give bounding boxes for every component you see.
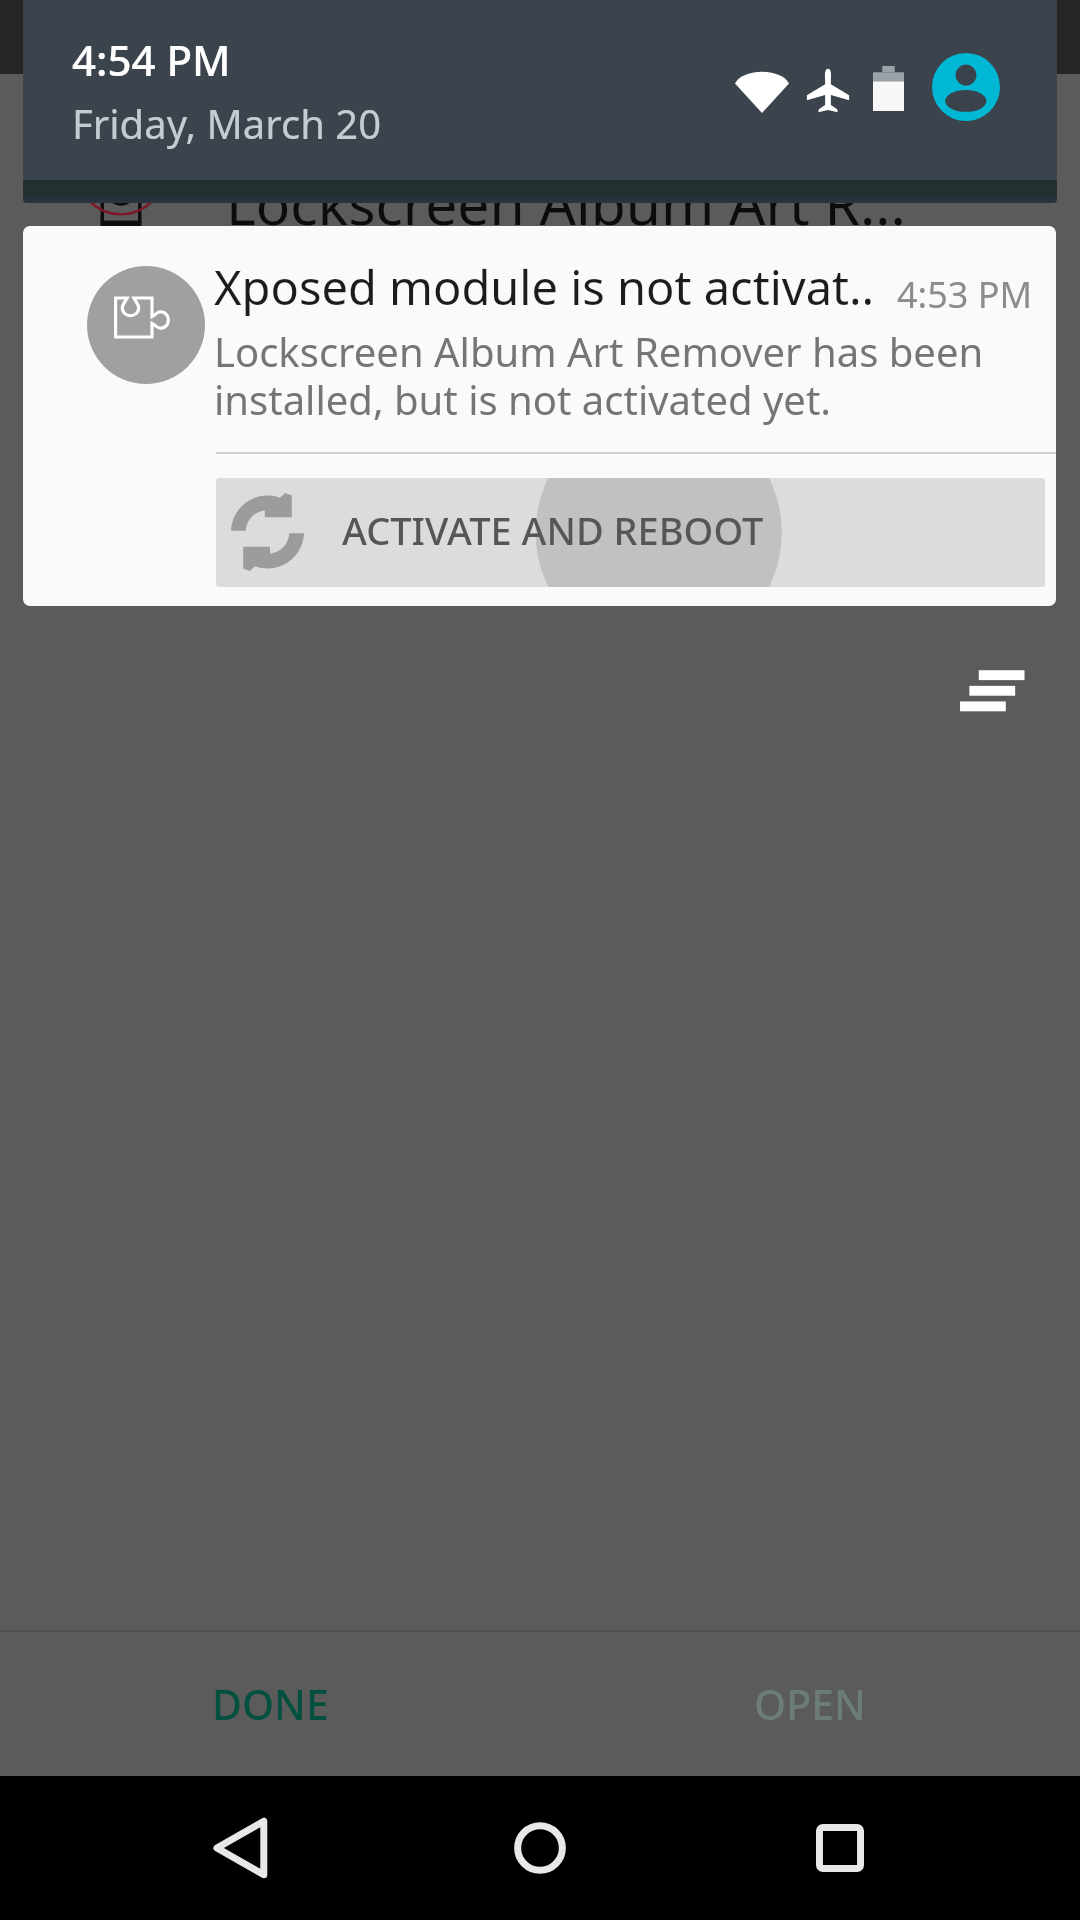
staticText: 4:53 PM xyxy=(897,270,1033,319)
staticText: Lockscreen Album Art Remover has been in… xyxy=(214,324,984,427)
button[interactable]: Notification settings xyxy=(930,635,1040,745)
button[interactable]: ACTIVATE AND REBOOT xyxy=(216,478,1045,587)
staticText: 4:54 PM xyxy=(72,31,231,88)
button[interactable]: OPEN xyxy=(540,1632,1080,1776)
staticText: DONE xyxy=(212,1676,329,1732)
staticText: Friday, March 20 xyxy=(72,96,382,150)
staticText: OPEN xyxy=(754,1676,866,1732)
staticText: ACTIVATE AND REBOOT xyxy=(342,504,764,556)
button[interactable]: Recents xyxy=(768,1776,912,1920)
button[interactable]: Back xyxy=(168,1776,312,1920)
staticText: Xposed module is not activat.. xyxy=(214,255,875,319)
button[interactable]: Home xyxy=(468,1776,612,1920)
staticText: Lockscreen Album Art R... xyxy=(226,164,906,242)
button[interactable]: DONE xyxy=(0,1632,540,1776)
